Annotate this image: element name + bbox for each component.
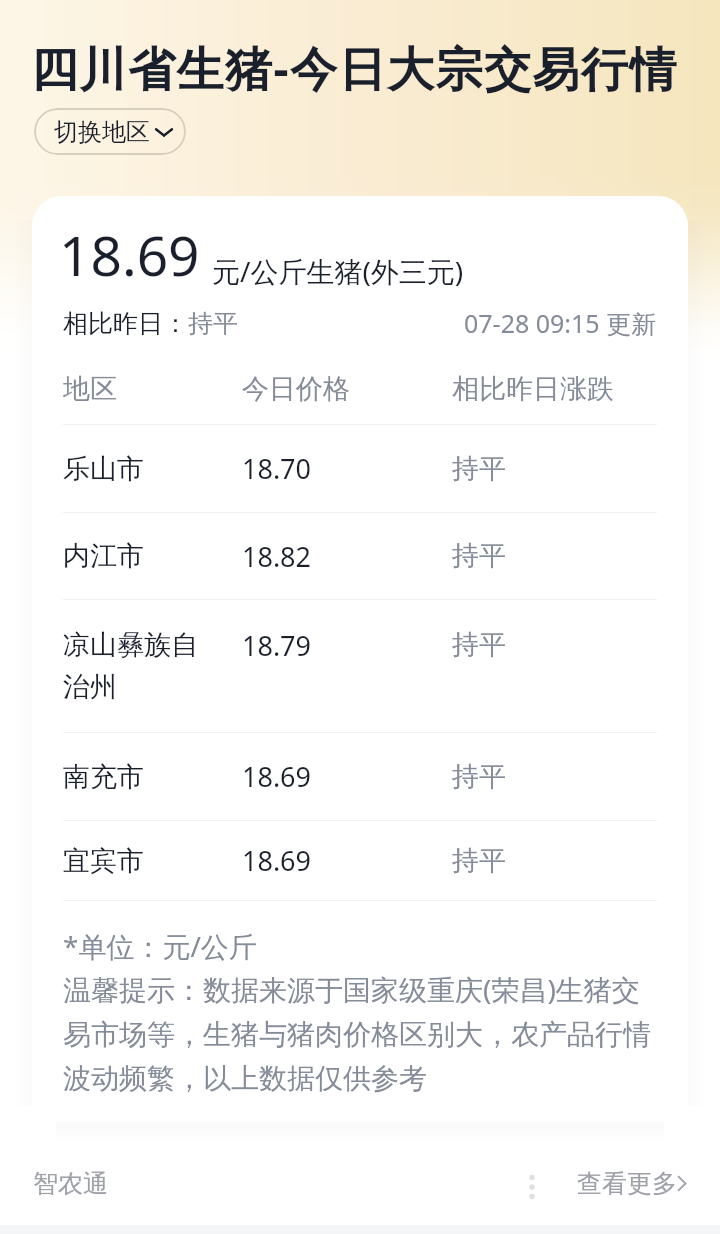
staticText: 相比昨日： [63,308,188,339]
staticText: 宜宾市 [63,844,242,878]
staticText: 查看更多 [577,1168,677,1199]
button[interactable]: 切换地区 [34,108,186,155]
staticText: 相比昨日涨跌 [452,372,614,406]
staticText: 地区 [63,372,242,406]
button[interactable]: More options [508,1155,556,1211]
staticText: 元/公斤生猪(外三元) [212,252,464,290]
staticText: 18.69 [59,217,200,292]
button[interactable]: 凉山彝族自治州 [63,600,657,732]
button[interactable]: 查看更多 [563,1155,700,1211]
staticText: *单位：元/公斤 [63,927,257,965]
staticText: 四川省生猪-今日大宗交易行情 [31,36,679,100]
button[interactable]: 乐山市 [63,425,657,512]
staticText: 南充市 [63,760,242,794]
staticText: 18.79 [242,627,452,664]
staticText: 切换地区 [54,117,150,147]
button[interactable]: 内江市 [63,513,657,599]
staticText: 持平 [452,452,506,486]
staticText: 持平 [452,844,506,878]
staticText: 持平 [188,308,238,339]
staticText: 凉山彝族自治州 [63,628,211,704]
staticText: 持平 [452,628,506,662]
staticText: 18.69 [242,842,452,879]
button[interactable]: 南充市 [63,733,657,820]
staticText: 18.82 [242,538,452,575]
staticText: 温馨提示：数据来源于国家级重庆(荣昌)生猪交易市场等，生猪与猪肉价格区别大，农产… [63,970,657,1096]
staticText: 07-28 09:15 更新 [464,306,657,340]
staticText: 今日价格 [242,372,452,406]
staticText: 持平 [452,760,506,794]
staticText: 18.70 [242,450,452,487]
button[interactable]: 智农通 [12,1155,129,1211]
button[interactable]: 宜宾市 [63,821,657,900]
staticText: 持平 [452,539,506,573]
staticText: 智农通 [33,1168,108,1199]
staticText: 乐山市 [63,452,242,486]
staticText: 18.69 [242,758,452,795]
staticText: 内江市 [63,539,242,573]
